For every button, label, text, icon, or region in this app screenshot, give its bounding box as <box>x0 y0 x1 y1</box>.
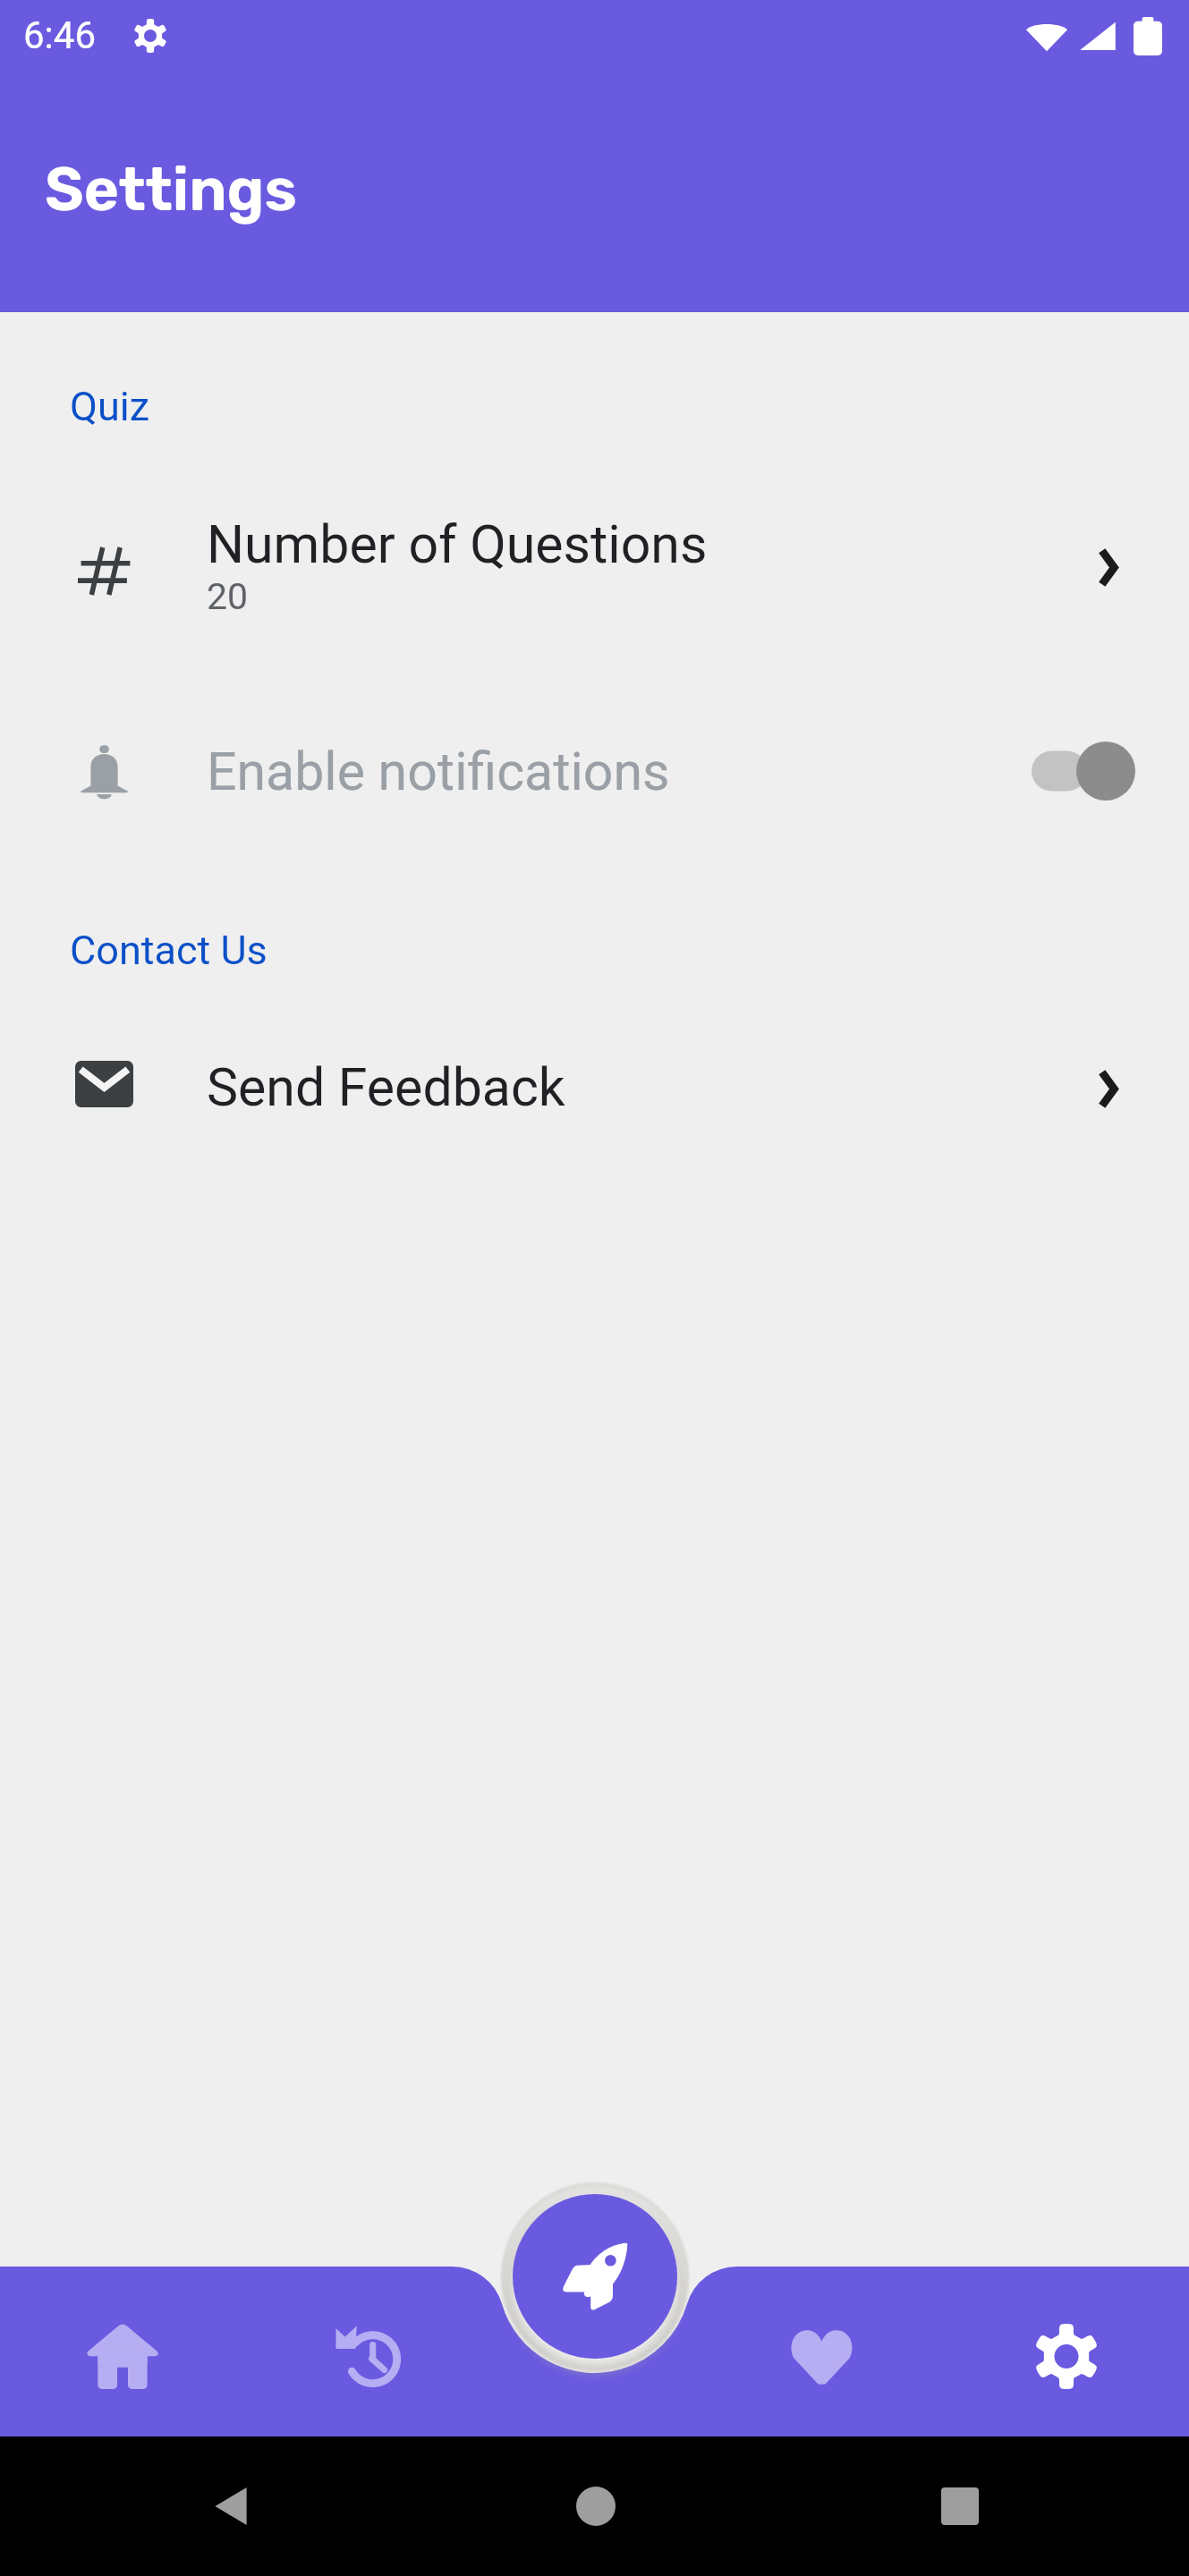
staticText: Enable notifications <box>207 741 1032 802</box>
button[interactable]: Settings <box>944 2276 1189 2436</box>
staticText: Quiz <box>70 383 150 430</box>
button[interactable]: Start quiz <box>513 2194 677 2359</box>
staticText: 6:46 <box>23 13 96 57</box>
staticText: Settings <box>45 154 297 225</box>
staticText: Contact Us <box>70 927 268 974</box>
staticText: Send Feedback <box>207 1056 565 1118</box>
button[interactable]: Home <box>0 2276 245 2436</box>
staticText: 20 <box>207 575 249 618</box>
button[interactable]: Number of Questions <box>0 501 1189 630</box>
button[interactable]: History <box>245 2276 489 2436</box>
button[interactable]: Send Feedback <box>0 1022 1189 1151</box>
staticText: Number of Questions <box>207 513 708 575</box>
button[interactable]: Enable notifications <box>0 726 1189 816</box>
button[interactable]: Favorites <box>700 2276 944 2436</box>
